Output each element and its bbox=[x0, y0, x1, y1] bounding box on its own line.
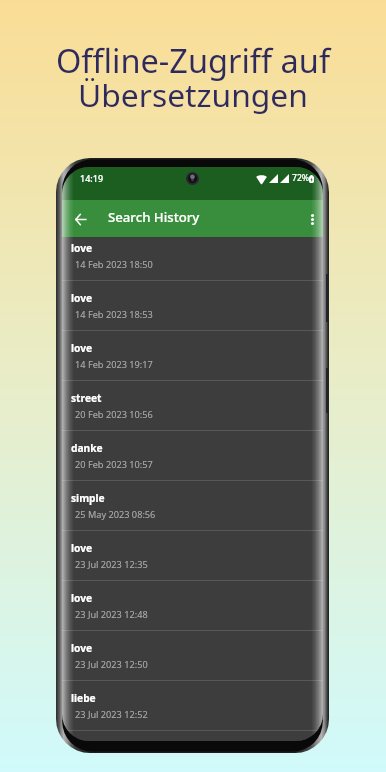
button[interactable]: danke bbox=[62, 431, 323, 481]
staticText: 23 Jul 2023 12:50 bbox=[75, 658, 148, 671]
button[interactable]: simple bbox=[62, 481, 323, 531]
staticText: 20 Feb 2023 10:57 bbox=[75, 458, 153, 471]
button[interactable]: More options bbox=[302, 207, 322, 231]
staticText: 14 Feb 2023 19:17 bbox=[75, 358, 153, 371]
button[interactable]: love bbox=[62, 331, 323, 381]
staticText: love bbox=[71, 641, 93, 655]
button[interactable]: liebe bbox=[62, 681, 323, 731]
staticText: Offline-Zugriff auf bbox=[0, 38, 386, 82]
button[interactable]: street bbox=[62, 381, 323, 431]
button[interactable]: love bbox=[62, 237, 323, 281]
staticText: 25 May 2023 08:56 bbox=[75, 508, 156, 521]
staticText: Search History bbox=[108, 208, 200, 226]
staticText: liebe bbox=[71, 691, 96, 705]
button[interactable]: love bbox=[62, 531, 323, 581]
button[interactable]: love bbox=[62, 281, 323, 331]
staticText: danke bbox=[71, 441, 103, 455]
staticText: love bbox=[71, 341, 93, 355]
staticText: 23 Jul 2023 12:48 bbox=[75, 608, 148, 621]
staticText: 23 Jul 2023 12:35 bbox=[75, 558, 148, 571]
staticText: street bbox=[71, 391, 102, 405]
staticText: 23 Jul 2023 12:52 bbox=[75, 708, 148, 721]
staticText: 14 Feb 2023 18:50 bbox=[75, 258, 153, 271]
staticText: 72% bbox=[292, 172, 310, 184]
button[interactable]: love bbox=[62, 581, 323, 631]
staticText: love bbox=[71, 541, 93, 555]
staticText: 20 Feb 2023 10:56 bbox=[75, 408, 153, 421]
staticText: love bbox=[71, 291, 93, 305]
staticText: love bbox=[71, 241, 93, 255]
staticText: simple bbox=[71, 491, 105, 505]
staticText: 14:19 bbox=[80, 172, 104, 184]
staticText: Übersetzungen bbox=[0, 73, 386, 116]
button[interactable]: love bbox=[62, 631, 323, 681]
button[interactable]: Back bbox=[68, 207, 92, 231]
staticText: 14 Feb 2023 18:53 bbox=[75, 308, 153, 321]
staticText: love bbox=[71, 591, 93, 605]
